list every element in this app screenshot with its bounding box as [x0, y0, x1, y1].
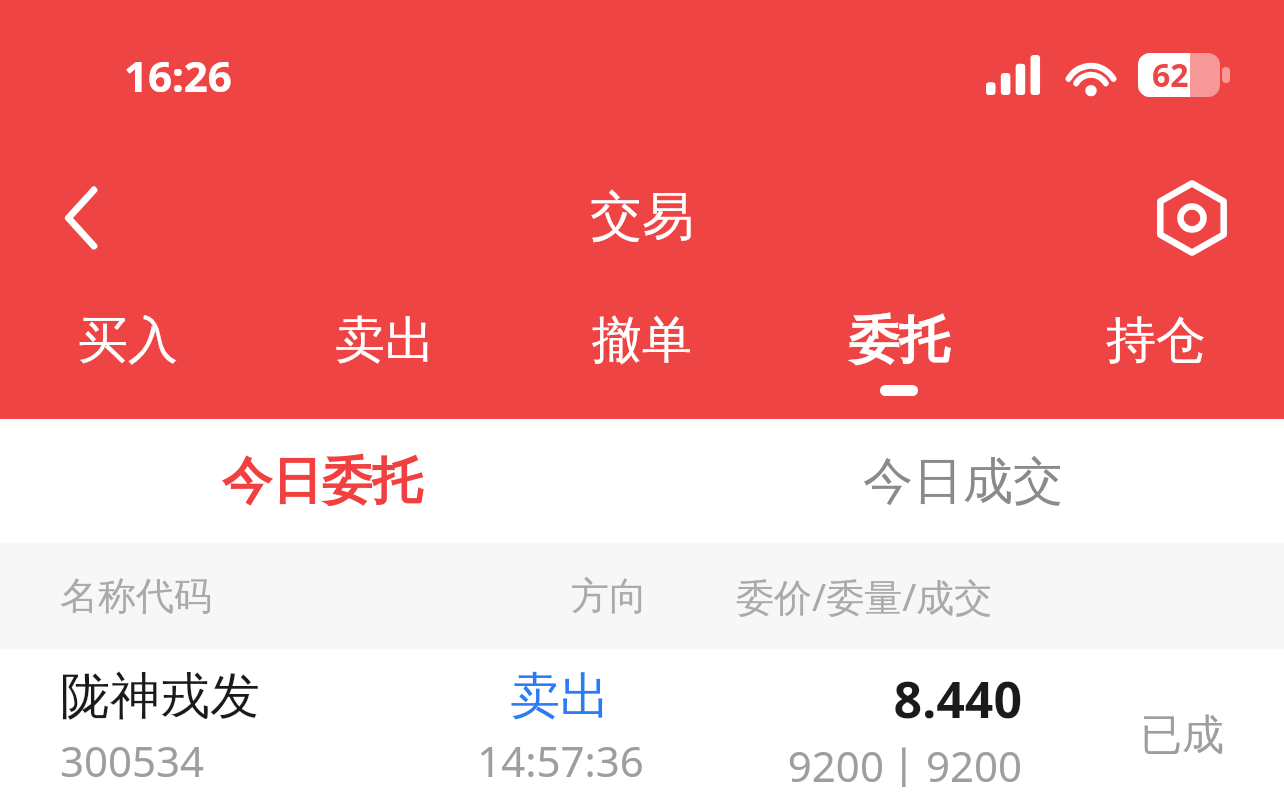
staticText: 买入	[78, 309, 178, 372]
button[interactable]: 今日成交	[642, 419, 1284, 543]
button[interactable]: 委托	[770, 288, 1027, 419]
staticText: 名称代码	[60, 572, 212, 620]
staticText: 16:26	[124, 47, 232, 104]
staticText: 今日委托	[222, 450, 422, 513]
staticText: 委价/委量/成交	[736, 570, 993, 622]
button[interactable]: 设置	[1142, 168, 1242, 268]
button[interactable]: 返回	[32, 168, 132, 268]
staticText: 陇神戎发	[60, 665, 260, 728]
button[interactable]: 今日委托	[0, 419, 642, 543]
staticText: 委托	[849, 309, 949, 372]
button[interactable]: 卖出	[256, 288, 513, 419]
staticText: 14:57:36	[477, 732, 644, 789]
button[interactable]: 陇神戎发	[0, 649, 1284, 807]
staticText: 撤单	[592, 309, 692, 372]
staticText: 今日成交	[863, 450, 1063, 513]
staticText: 方向	[571, 572, 647, 620]
staticText: 9200丨9200	[787, 737, 1022, 794]
staticText: 卖出	[335, 309, 435, 372]
button[interactable]: 撤单	[513, 288, 770, 419]
staticText: 8.440	[893, 665, 1022, 733]
staticText: 已成	[1140, 709, 1224, 762]
staticText: 持仓	[1106, 309, 1206, 372]
button[interactable]: 持仓	[1027, 288, 1284, 419]
staticText: 卖出	[510, 665, 610, 728]
staticText: 62	[1152, 53, 1189, 97]
staticText: 交易	[590, 184, 694, 250]
staticText: 300534	[60, 732, 205, 789]
button[interactable]: 买入	[0, 288, 256, 419]
